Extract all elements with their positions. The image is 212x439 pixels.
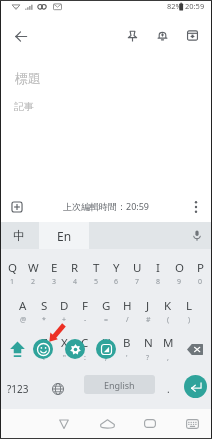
staticText: " xyxy=(63,353,66,363)
button[interactable]: Home xyxy=(93,409,122,438)
button[interactable] xyxy=(127,249,148,289)
button[interactable]: Add reminder xyxy=(148,21,177,50)
staticText: + xyxy=(62,315,67,325)
button[interactable] xyxy=(158,289,179,329)
button[interactable]: Back xyxy=(49,409,78,438)
staticText: : xyxy=(84,353,86,363)
staticText: . xyxy=(167,382,170,396)
staticText: B xyxy=(123,335,131,351)
staticText: C xyxy=(81,335,89,351)
staticText: 上次編輯時間：20:59 xyxy=(63,200,150,212)
button[interactable]: Keyboard settings xyxy=(65,339,85,359)
staticText: 中 xyxy=(13,228,25,243)
button[interactable]: Backspace xyxy=(179,329,210,369)
button[interactable]: 記事 xyxy=(14,100,134,116)
staticText: P xyxy=(197,260,204,276)
staticText: 4 xyxy=(73,277,78,287)
staticText: 5 xyxy=(94,277,99,287)
button[interactable]: En xyxy=(39,222,89,249)
staticText: 8 xyxy=(156,277,161,287)
button[interactable]: 標題 xyxy=(15,70,135,88)
staticText: N xyxy=(144,335,153,351)
button[interactable] xyxy=(85,249,106,289)
staticText: F xyxy=(82,298,88,314)
staticText: 20:59 xyxy=(185,1,205,11)
staticText: ! xyxy=(43,353,45,363)
button[interactable] xyxy=(189,249,210,289)
button[interactable] xyxy=(33,329,54,369)
staticText: 標題 xyxy=(15,70,41,86)
staticText: X xyxy=(61,335,68,351)
button[interactable] xyxy=(106,249,127,289)
button[interactable]: Stickers xyxy=(96,339,116,359)
button[interactable] xyxy=(116,289,137,329)
staticText: 0 xyxy=(198,277,203,287)
staticText: English xyxy=(104,379,135,391)
staticText: S xyxy=(41,298,48,314)
staticText: 3 xyxy=(52,277,57,287)
staticText: - xyxy=(84,315,87,325)
button[interactable] xyxy=(33,289,54,329)
staticText: Y xyxy=(113,260,120,276)
button[interactable]: English xyxy=(84,375,155,394)
button[interactable] xyxy=(137,329,158,369)
button[interactable] xyxy=(75,329,96,369)
button[interactable] xyxy=(2,249,23,289)
staticText: J xyxy=(146,298,150,314)
button[interactable] xyxy=(137,289,158,329)
button[interactable] xyxy=(96,289,117,329)
button[interactable]: 中 xyxy=(0,222,38,249)
staticText: * xyxy=(42,315,46,325)
staticText: U xyxy=(133,260,142,276)
button[interactable]: Voice input xyxy=(184,222,210,249)
button[interactable]: Change keyboard language xyxy=(44,369,72,409)
staticText: 記事 xyxy=(14,100,34,113)
button[interactable]: ?123 xyxy=(0,369,36,409)
staticText: H xyxy=(123,298,132,314)
button[interactable]: Archive xyxy=(178,21,207,50)
button[interactable]: Recent apps xyxy=(135,409,164,438)
button[interactable]: Add note item xyxy=(4,194,30,220)
button[interactable]: . xyxy=(157,369,179,409)
staticText: 6 xyxy=(114,277,119,287)
button[interactable] xyxy=(64,249,85,289)
staticText: G xyxy=(102,298,111,314)
button[interactable]: Shift xyxy=(2,329,33,369)
staticText: 2 xyxy=(31,277,36,287)
button[interactable] xyxy=(44,249,65,289)
staticText: ' xyxy=(126,353,128,363)
button[interactable] xyxy=(116,329,137,369)
button[interactable] xyxy=(158,329,179,369)
staticText: En xyxy=(57,228,72,244)
button[interactable] xyxy=(54,289,75,329)
button[interactable] xyxy=(148,249,169,289)
staticText: A xyxy=(19,298,27,314)
button[interactable]: Pin note xyxy=(118,21,147,50)
staticText: K xyxy=(164,298,172,314)
button[interactable] xyxy=(23,249,44,289)
staticText: D xyxy=(60,298,69,314)
staticText: Q xyxy=(8,260,17,276)
button[interactable]: More options xyxy=(183,194,209,220)
button[interactable] xyxy=(12,289,33,329)
staticText: 1 xyxy=(10,277,15,287)
button[interactable] xyxy=(75,289,96,329)
staticText: L xyxy=(186,298,193,314)
button[interactable]: Enter xyxy=(184,375,207,398)
button[interactable]: Hide keyboard xyxy=(178,409,207,438)
staticText: V xyxy=(103,335,110,351)
button[interactable] xyxy=(168,249,189,289)
staticText: = xyxy=(104,315,109,325)
button[interactable] xyxy=(96,329,117,369)
button[interactable] xyxy=(54,329,75,369)
button[interactable]: Navigate up xyxy=(6,22,35,51)
staticText: W xyxy=(28,260,39,276)
staticText: ?123 xyxy=(7,382,29,396)
button[interactable] xyxy=(179,289,200,329)
staticText: ) xyxy=(188,315,191,325)
staticText: T xyxy=(93,260,100,276)
staticText: ? xyxy=(146,353,150,363)
button[interactable]: Emoji xyxy=(33,339,53,359)
staticText: 82% xyxy=(167,1,182,11)
staticText: Z xyxy=(41,335,48,351)
